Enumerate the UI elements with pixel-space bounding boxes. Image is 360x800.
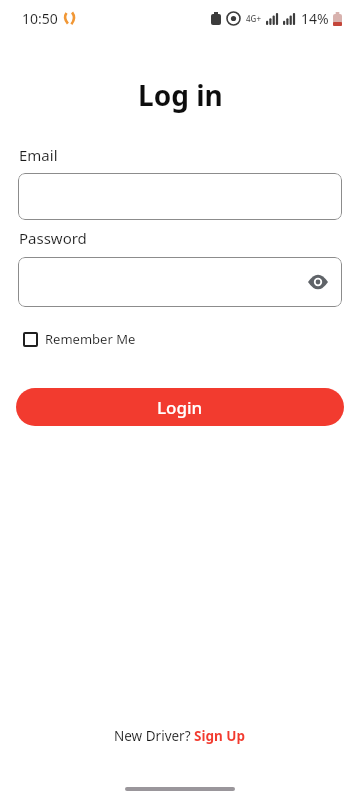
- button[interactable]: Remember Me: [23, 330, 136, 348]
- staticText: New Driver? Sign Up: [114, 727, 246, 745]
- button[interactable]: New Driver? Sign Up: [0, 727, 360, 745]
- staticText: 10:50: [22, 9, 58, 28]
- staticText: Login: [157, 396, 203, 419]
- button[interactable]: [18, 257, 342, 307]
- staticText: 14%: [301, 9, 329, 28]
- staticText: 4G+: [246, 13, 261, 24]
- staticText: Password: [19, 228, 87, 248]
- staticText: Email: [19, 145, 58, 165]
- button[interactable]: [18, 173, 342, 220]
- staticText: Remember Me: [45, 330, 136, 348]
- button[interactable]: Login: [16, 388, 344, 426]
- staticText: Log in: [138, 76, 223, 114]
